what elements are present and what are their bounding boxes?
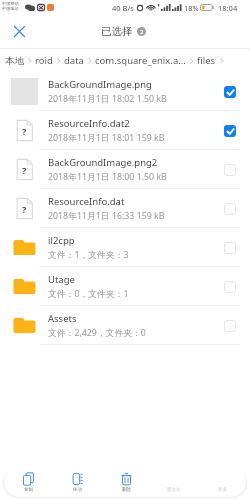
button[interactable]: 删除 <box>102 467 150 497</box>
staticText: 重命名 <box>167 487 181 493</box>
button[interactable]: 移动 <box>53 467 102 497</box>
button[interactable]: Utage <box>0 267 250 306</box>
button[interactable]: files <box>197 54 216 67</box>
button[interactable]: com.square_enix.a... <box>95 54 186 67</box>
button[interactable]: BackGroundImage.png <box>0 72 250 111</box>
button[interactable]: Assets <box>0 306 250 345</box>
button[interactable]: il2cpp <box>0 228 250 267</box>
button[interactable]: Select item <box>219 198 241 220</box>
staticText: ? <box>22 203 27 215</box>
button[interactable]: ? <box>0 189 250 228</box>
staticText: il2cpp <box>48 234 75 247</box>
staticText: ResourceInfo.dat2 <box>48 117 130 130</box>
staticText: 2018年11月1日 18:01 159 kB <box>48 132 165 144</box>
staticText: 2 <box>140 28 144 36</box>
staticText: 2018年11月1日 18:02 1.50 kB <box>48 93 167 105</box>
button[interactable]: 本地 <box>5 55 24 67</box>
staticText: 已选择 <box>101 25 133 38</box>
staticText: files <box>197 54 216 67</box>
staticText: com.square_enix.a... <box>95 54 186 67</box>
staticText: 18:04 <box>218 3 238 13</box>
button[interactable]: ? <box>0 111 250 150</box>
button[interactable]: Select item <box>219 315 241 337</box>
staticText: 文件：0，文件夹：1 <box>48 288 129 300</box>
staticText: Assets <box>48 312 77 325</box>
staticText: 复制 <box>24 487 33 493</box>
staticText: 本地 <box>5 55 24 67</box>
button[interactable]: Select item <box>219 81 241 103</box>
staticText: 2018年11月1日 16:33 159 kB <box>48 210 165 222</box>
staticText: 文件：1，文件夹：3 <box>48 249 129 261</box>
staticText: 更多 <box>218 487 227 493</box>
staticText: 移动 <box>73 487 82 493</box>
staticText: Utage <box>48 273 75 286</box>
button[interactable]: Select item <box>219 120 241 142</box>
button[interactable]: 更多 <box>198 467 246 497</box>
staticText: ? <box>22 125 27 137</box>
button[interactable]: Select item <box>219 276 241 298</box>
staticText: ResourceInfo.dat <box>48 195 125 208</box>
staticText: BackGroundImage.png <box>48 78 152 91</box>
staticText: 18% <box>184 3 199 13</box>
staticText: 40 B/s <box>112 3 134 13</box>
staticText: BackGroundImage.png2 <box>48 156 158 169</box>
button[interactable]: Select item <box>219 237 241 259</box>
button[interactable]: Select item <box>219 159 241 181</box>
button[interactable]: 重命名 <box>150 467 198 497</box>
staticText: roid <box>35 54 53 67</box>
button[interactable]: data <box>64 54 84 67</box>
button[interactable]: ? <box>0 150 250 189</box>
button[interactable]: 复制 <box>4 467 53 497</box>
staticText: 中国移动 <box>2 1 19 6</box>
staticText: 文件：2,429，文件夹：0 <box>48 327 146 339</box>
staticText: 2018年11月1日 18:00 1.50 kB <box>48 171 167 183</box>
button[interactable]: roid <box>35 54 53 67</box>
staticText: 删除 <box>122 487 131 493</box>
button[interactable]: Close selection <box>7 19 31 43</box>
staticText: data <box>64 54 84 67</box>
staticText: 中国电信 <box>2 6 19 11</box>
staticText: ? <box>22 164 27 176</box>
